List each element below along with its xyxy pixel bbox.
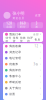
staticText: 待评价 — [27, 36, 33, 43]
staticText: › — [40, 92, 41, 96]
staticText: 券 — [35, 25, 38, 29]
button[interactable]: 优惠券 — [3, 61, 43, 67]
button[interactable]: 待收货 — [19, 36, 27, 43]
button[interactable]: 关于我们 — [3, 85, 43, 91]
button[interactable]: 售后 — [34, 38, 41, 41]
button[interactable]: 客服中心 — [3, 73, 43, 79]
staticText: 12 — [34, 44, 38, 48]
staticText: 地址管理 — [9, 57, 21, 60]
staticText: 我的收藏 — [9, 45, 21, 48]
button[interactable]: 待付款 — [5, 36, 12, 43]
staticText: › — [40, 62, 41, 66]
staticText: 设置 — [35, 14, 41, 17]
button[interactable]: 待发货 — [12, 36, 19, 43]
staticText: 客服中心 — [9, 75, 21, 78]
staticText: 我的订单 — [9, 33, 21, 36]
staticText: 待收货 — [20, 36, 26, 43]
staticText: 浏览记录 — [9, 51, 21, 54]
button[interactable]: 128 — [3, 22, 15, 28]
button[interactable]: 全部 › — [33, 32, 41, 36]
staticText: 全部 › — [33, 32, 41, 36]
button[interactable]: 待评价 — [27, 36, 34, 43]
staticText: › — [40, 86, 41, 90]
button[interactable]: 设置 — [33, 13, 42, 17]
button[interactable]: 地址管理 — [3, 55, 43, 61]
staticText: 余额 — [6, 25, 12, 29]
button[interactable]: 设置 — [3, 91, 43, 97]
staticText: 帮助反馈 — [9, 81, 21, 84]
button[interactable]: 我的评价 — [3, 67, 43, 73]
staticText: › — [40, 56, 41, 60]
button[interactable]: 3 — [31, 22, 43, 28]
staticText: 张小明 — [12, 11, 24, 16]
staticText: 待发货 — [13, 36, 19, 43]
button[interactable]: 浏览记录 — [3, 49, 43, 55]
staticText: 优惠券 — [9, 63, 18, 66]
staticText: 黄金会员 — [12, 16, 24, 20]
staticText: › — [40, 80, 41, 84]
staticText: › — [40, 68, 41, 72]
staticText: 3张 — [33, 62, 38, 66]
staticText: 3 — [36, 22, 38, 25]
button[interactable]: 我的收藏 — [3, 43, 43, 49]
staticText: › — [40, 74, 41, 78]
staticText: 积分 — [20, 25, 26, 29]
staticText: › — [40, 44, 41, 48]
staticText: › — [40, 50, 41, 54]
button[interactable]: 帮助反馈 — [3, 79, 43, 85]
staticText: 关于我们 — [9, 87, 21, 90]
staticText: 售后 — [34, 38, 40, 41]
staticText: 128 — [6, 22, 12, 25]
button[interactable]: 860 — [17, 22, 29, 28]
staticText: 待付款 — [6, 36, 12, 43]
staticText: 860 — [20, 22, 26, 25]
staticText: 设置 — [9, 93, 15, 96]
staticText: 我的评价 — [9, 69, 21, 72]
